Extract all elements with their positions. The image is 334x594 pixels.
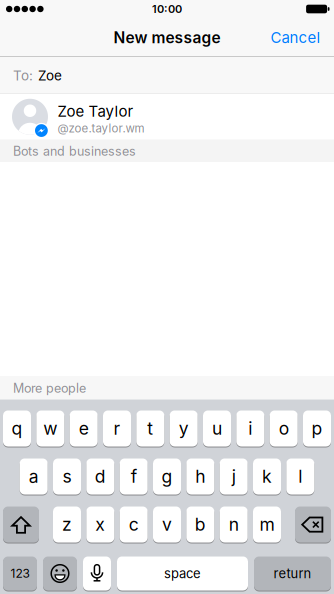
button[interactable] bbox=[43, 556, 77, 590]
staticText: z bbox=[62, 514, 72, 535]
button[interactable]: h bbox=[186, 458, 214, 494]
button[interactable]: m bbox=[253, 506, 281, 542]
staticText: g bbox=[161, 466, 172, 487]
staticText: Zoe bbox=[38, 67, 62, 83]
button[interactable] bbox=[295, 506, 331, 542]
staticText: u bbox=[212, 418, 222, 439]
button[interactable]: y bbox=[170, 410, 198, 446]
staticText: t bbox=[147, 418, 153, 439]
staticText: o bbox=[279, 418, 289, 439]
button[interactable]: v bbox=[153, 506, 181, 542]
button[interactable]: r bbox=[103, 410, 131, 446]
staticText: @zoe.taylor.wm bbox=[57, 122, 144, 135]
staticText: y bbox=[179, 418, 189, 439]
staticText: w bbox=[43, 418, 57, 439]
staticText: Cancel bbox=[270, 29, 320, 46]
staticText: m bbox=[259, 514, 274, 535]
button[interactable]: a bbox=[20, 458, 48, 494]
button[interactable]: i bbox=[236, 410, 264, 446]
button[interactable]: p bbox=[303, 410, 331, 446]
button[interactable]: s bbox=[53, 458, 81, 494]
staticText: e bbox=[79, 418, 89, 439]
staticText: To: bbox=[13, 67, 33, 83]
button[interactable]: b bbox=[186, 506, 214, 542]
button[interactable]: e bbox=[70, 410, 98, 446]
staticText: a bbox=[29, 466, 39, 487]
staticText: p bbox=[311, 418, 322, 439]
staticText: Zoe Taylor bbox=[57, 102, 133, 120]
staticText: l bbox=[298, 466, 302, 487]
staticText: New message bbox=[113, 28, 220, 47]
staticText: i bbox=[248, 418, 252, 439]
staticText: d bbox=[95, 466, 106, 487]
button[interactable]: w bbox=[36, 410, 64, 446]
staticText: return bbox=[273, 566, 311, 581]
button[interactable]: c bbox=[120, 506, 148, 542]
button[interactable]: o bbox=[270, 410, 298, 446]
staticText: j bbox=[232, 466, 236, 487]
staticText: h bbox=[195, 466, 205, 487]
button[interactable]: k bbox=[253, 458, 281, 494]
button[interactable]: n bbox=[220, 506, 248, 542]
button[interactable]: 123 bbox=[3, 556, 37, 590]
button[interactable]: f bbox=[120, 458, 148, 494]
staticText: More people bbox=[13, 381, 86, 396]
staticText: q bbox=[11, 418, 22, 439]
staticText: f bbox=[131, 466, 137, 487]
staticText: Bots and businesses bbox=[13, 144, 136, 159]
button[interactable] bbox=[83, 556, 111, 590]
button[interactable]: d bbox=[86, 458, 114, 494]
button[interactable]: space bbox=[117, 556, 248, 590]
staticText: s bbox=[62, 466, 71, 487]
button[interactable]: t bbox=[136, 410, 164, 446]
button[interactable]: l bbox=[286, 458, 314, 494]
staticText: c bbox=[129, 514, 139, 535]
button[interactable]: j bbox=[220, 458, 248, 494]
button[interactable]: return bbox=[254, 556, 331, 590]
staticText: b bbox=[195, 514, 206, 535]
staticText: n bbox=[229, 514, 239, 535]
button[interactable]: z bbox=[53, 506, 81, 542]
button[interactable]: u bbox=[203, 410, 231, 446]
button[interactable]: g bbox=[153, 458, 181, 494]
staticText: 123 bbox=[10, 566, 29, 581]
button[interactable]: Cancel bbox=[270, 29, 334, 46]
staticText: 10:00 bbox=[152, 2, 182, 15]
staticText: k bbox=[262, 466, 272, 487]
staticText: x bbox=[95, 514, 105, 535]
staticText: r bbox=[113, 418, 120, 439]
button[interactable] bbox=[3, 506, 39, 542]
button[interactable]: q bbox=[3, 410, 31, 446]
staticText: space bbox=[164, 566, 201, 581]
button[interactable]: x bbox=[86, 506, 114, 542]
button[interactable]: Zoe Taylor bbox=[0, 94, 334, 139]
staticText: v bbox=[162, 514, 172, 535]
